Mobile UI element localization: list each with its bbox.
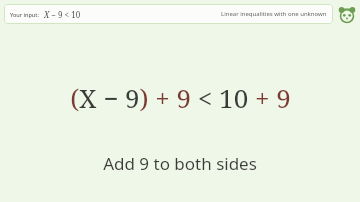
staticText: Your input: [10, 11, 39, 18]
button[interactable]: App logo [337, 5, 357, 25]
staticText: (X − 9) + 9 < 10 + 9 [70, 80, 291, 115]
staticText: Add 9 to both sides [103, 152, 257, 175]
staticText: X − 9 < 10 [44, 9, 81, 20]
button[interactable]: Your input: [4, 4, 333, 24]
staticText: Linear inequalities with one unknown [221, 10, 327, 18]
